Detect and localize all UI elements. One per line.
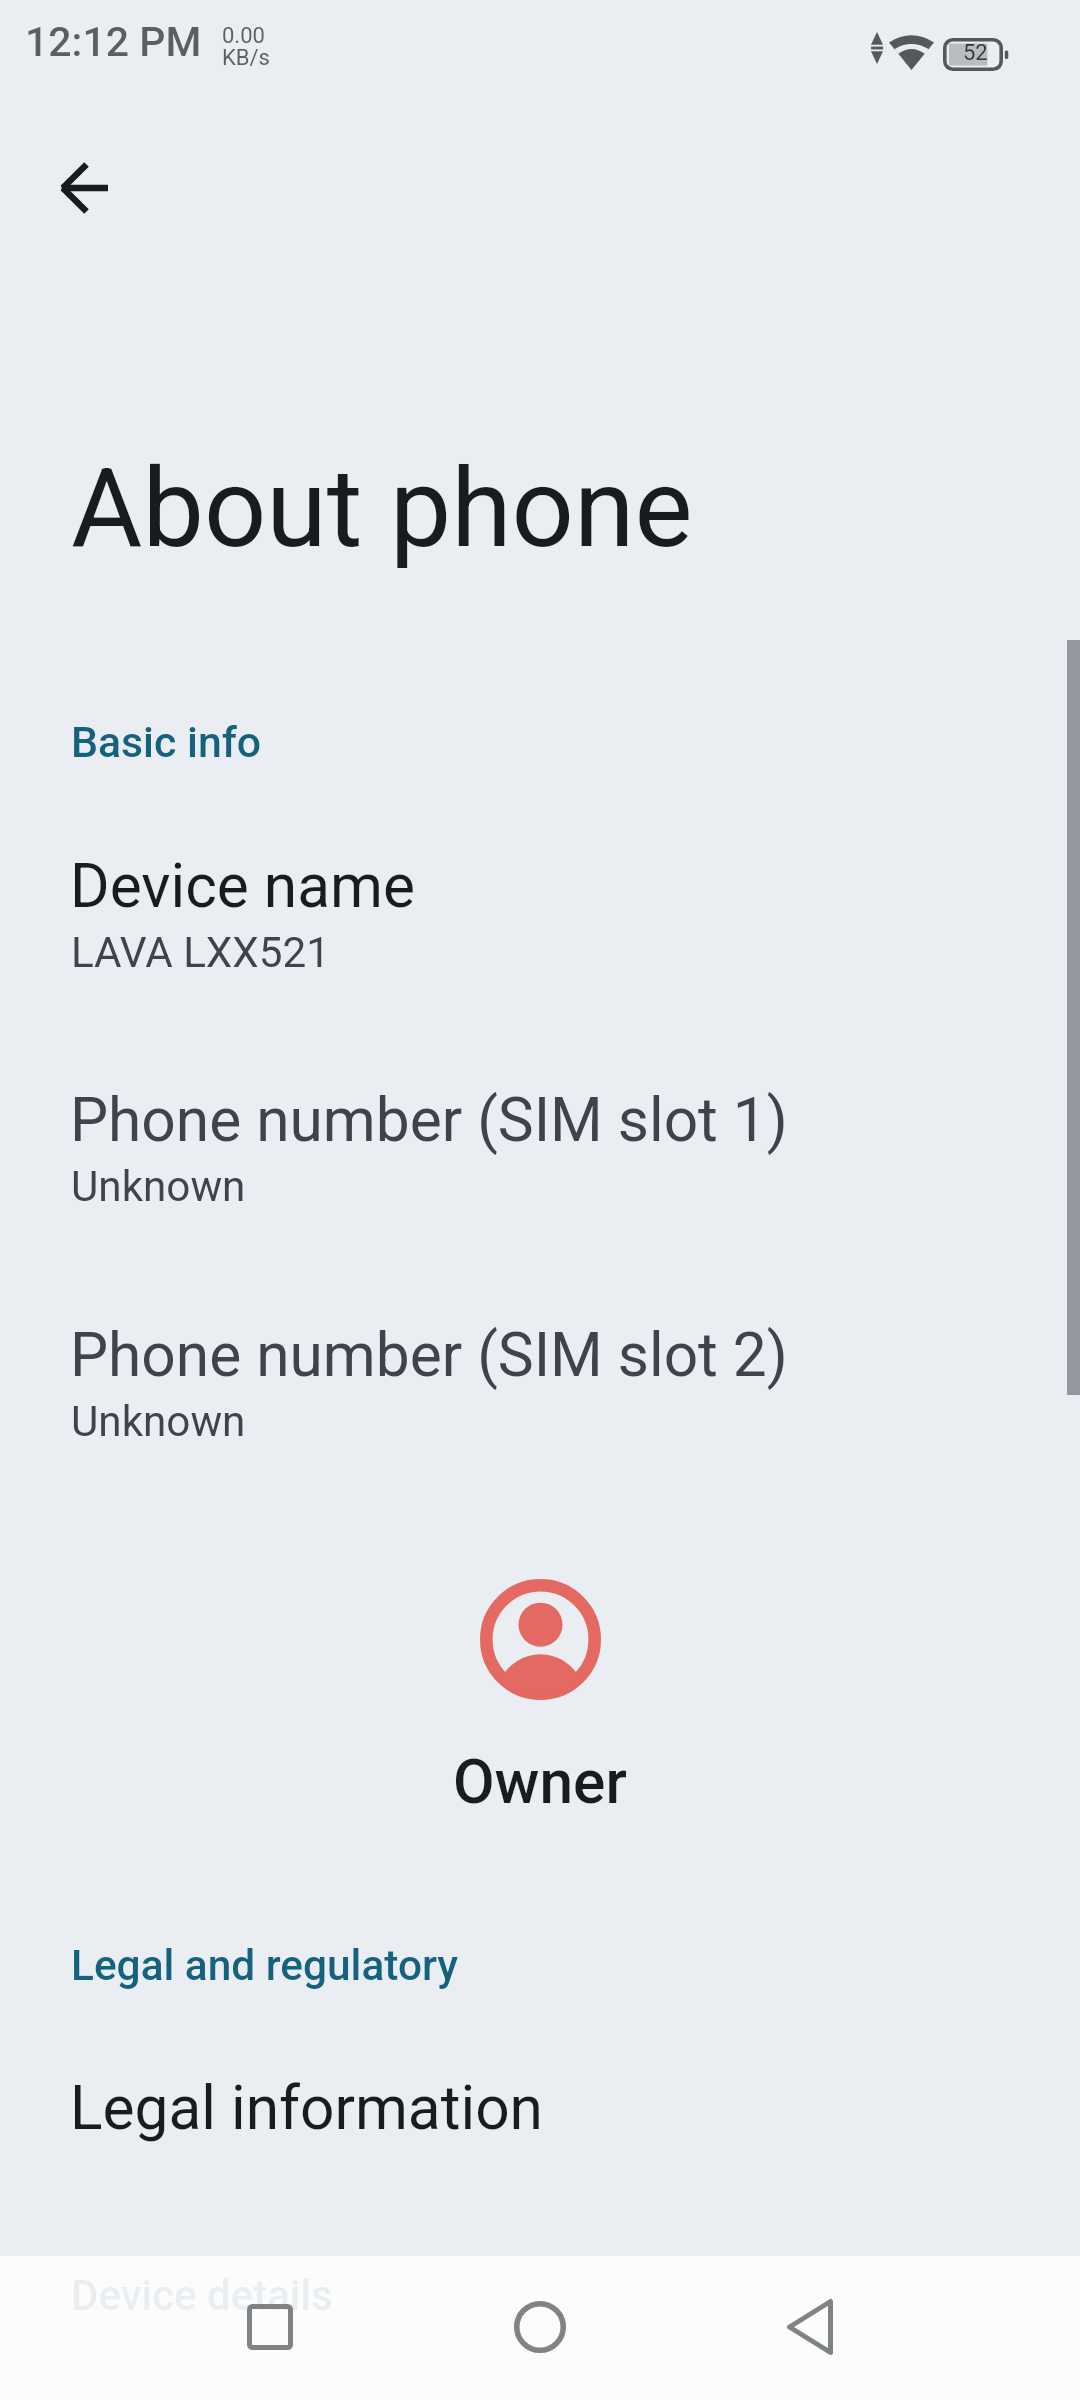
staticText: Device name [70, 851, 416, 922]
staticText: Unknown [71, 1397, 246, 1446]
staticText: 52 [963, 40, 988, 66]
button[interactable]: Phone number (SIM slot 2) [0, 1288, 1080, 1463]
staticText: Legal information [70, 2073, 543, 2144]
staticText: Unknown [71, 1162, 246, 1211]
staticText: About phone [71, 444, 693, 572]
button[interactable]: Owner [380, 1558, 700, 1850]
staticText: Device details [71, 2271, 333, 2320]
other: Mobile data activity [871, 32, 883, 64]
button[interactable]: Home [480, 2267, 600, 2387]
staticText: Owner [453, 1747, 627, 1818]
other: Battery 52 percent [943, 38, 1009, 72]
button[interactable]: Phone number (SIM slot 1) [0, 1053, 1080, 1228]
button[interactable]: Device name [0, 819, 1080, 994]
button[interactable]: Recent apps [210, 2267, 330, 2387]
button[interactable]: Back [750, 2267, 870, 2387]
staticText: 0.00 [222, 23, 265, 49]
button[interactable]: Navigate up [24, 128, 144, 248]
staticText: KB/s [222, 45, 270, 71]
other: Wi-Fi signal [889, 32, 934, 70]
staticText: Phone number (SIM slot 1) [70, 1085, 788, 1156]
staticText: Legal and regulatory [71, 1941, 459, 1991]
staticText: 12:12 PM [25, 18, 202, 66]
staticText: LAVA LXX521 [71, 928, 330, 977]
button[interactable]: Legal information [0, 2041, 1080, 2175]
staticText: Phone number (SIM slot 2) [70, 1320, 788, 1391]
staticText: Basic info [71, 717, 262, 767]
